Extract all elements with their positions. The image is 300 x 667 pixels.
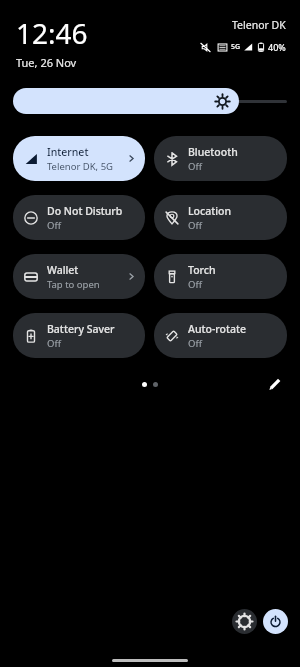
staticText: 40% [268, 41, 286, 53]
staticText: 12:46 [16, 14, 88, 52]
staticText: Telenor DK [232, 18, 286, 32]
button[interactable]: Torch [154, 254, 287, 299]
button[interactable]: Internet [13, 136, 145, 181]
button[interactable]: Brightness [13, 88, 287, 114]
staticText: Internet [47, 145, 89, 159]
staticText: Off [188, 219, 202, 232]
button[interactable]: Location [154, 195, 287, 240]
button[interactable]: Auto-rotate [154, 313, 287, 358]
button[interactable]: Wallet [13, 254, 145, 299]
staticText: Battery Saver [47, 322, 115, 336]
staticText: Off [47, 337, 61, 350]
staticText: 5G [231, 42, 241, 52]
staticText: Torch [188, 263, 216, 277]
button[interactable]: Bluetooth [154, 136, 287, 181]
staticText: Do Not Disturb [47, 204, 123, 218]
button[interactable]: Edit tiles [264, 375, 286, 393]
staticText: Telenor DK, 5G [47, 160, 113, 173]
button[interactable]: Power [263, 609, 288, 634]
staticText: Bluetooth [188, 145, 238, 159]
staticText: Off [47, 219, 61, 232]
staticText: Off [188, 160, 202, 173]
staticText: Tue, 26 Nov [16, 55, 77, 70]
button[interactable]: Settings [232, 609, 257, 634]
staticText: Tap to open [47, 278, 100, 291]
button[interactable]: Do Not Disturb [13, 195, 145, 240]
button[interactable]: Battery Saver [13, 313, 145, 358]
staticText: Off [188, 337, 202, 350]
staticText: Location [188, 204, 232, 218]
staticText: Auto-rotate [188, 322, 246, 336]
staticText: Wallet [47, 263, 79, 277]
staticText: Off [188, 278, 202, 291]
